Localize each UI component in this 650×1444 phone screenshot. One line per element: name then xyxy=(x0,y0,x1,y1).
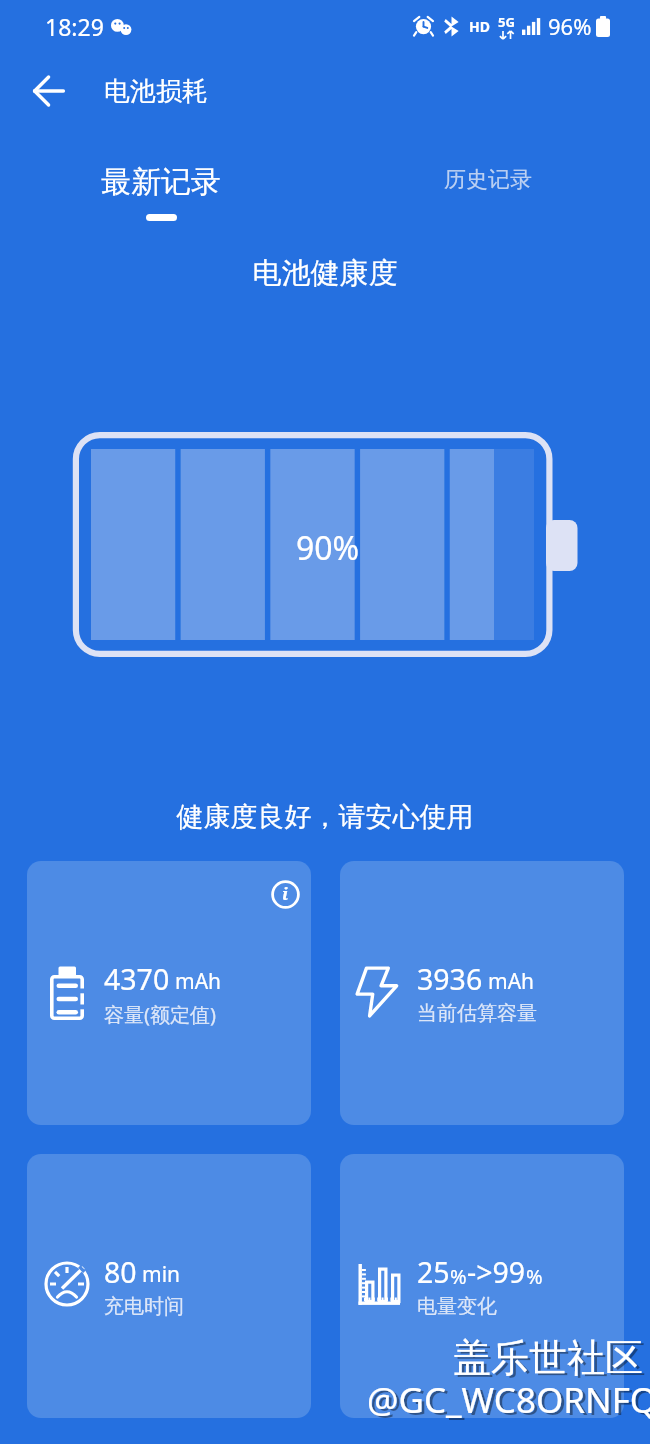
staticText: @GC_WC8ORNFQ xyxy=(370,1378,650,1426)
staticText: mAh xyxy=(488,967,535,996)
staticText: 80 xyxy=(104,1253,137,1292)
staticText: 3936 xyxy=(417,960,483,999)
staticText: min xyxy=(142,1260,181,1289)
staticText: 健康度良好，请安心使用 xyxy=(0,800,650,834)
staticText: 容量(额定值) xyxy=(104,1001,216,1028)
staticText: 25 xyxy=(417,1253,450,1292)
staticText: 18:29 xyxy=(45,11,104,42)
staticText: 充电时间 xyxy=(104,1294,184,1319)
staticText: 盖乐世社区 xyxy=(456,1336,646,1384)
staticText: 90% xyxy=(296,526,360,570)
staticText: @GC_WC8ORNFQ xyxy=(367,1376,650,1424)
button[interactable]: 3936 xyxy=(340,861,624,1125)
staticText: mAh xyxy=(175,967,222,996)
staticText: 历史记录 xyxy=(444,166,532,194)
staticText: 5G xyxy=(498,13,515,31)
button[interactable]: 历史记录 xyxy=(420,156,556,216)
button[interactable]: Back xyxy=(21,64,77,118)
staticText: 电池健康度 xyxy=(0,255,650,292)
button[interactable]: Info xyxy=(265,874,305,914)
staticText: 96% xyxy=(548,11,592,41)
staticText: 电池损耗 xyxy=(104,75,208,108)
staticText: % xyxy=(450,1263,467,1290)
staticText: 4370 xyxy=(104,960,170,999)
button[interactable]: 25 xyxy=(340,1154,624,1418)
staticText: 电量变化 xyxy=(417,1294,497,1319)
staticText: 最新记录 xyxy=(101,163,221,201)
button[interactable]: Info xyxy=(27,861,311,1125)
staticText: i xyxy=(282,882,289,905)
staticText: 盖乐世社区 xyxy=(453,1334,643,1382)
staticText: HD xyxy=(469,17,490,36)
button[interactable]: 80 xyxy=(27,1154,311,1418)
staticText: ->99 xyxy=(467,1253,526,1292)
staticText: % xyxy=(526,1263,543,1290)
staticText: 当前估算容量 xyxy=(417,1001,537,1026)
button[interactable]: 最新记录 xyxy=(86,158,236,228)
